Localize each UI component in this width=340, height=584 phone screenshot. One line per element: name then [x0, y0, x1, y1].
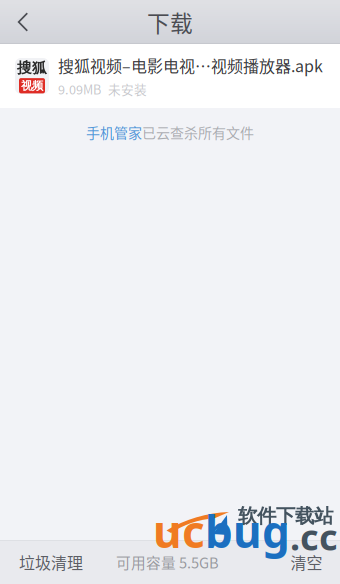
staticText: 垃圾清理 — [19, 550, 83, 574]
staticText: 视频 — [21, 79, 43, 93]
button[interactable]: 垃圾清理 — [0, 540, 102, 584]
staticText: 已云查杀所有文件 — [142, 122, 254, 142]
staticText: 9.09MB — [58, 80, 101, 98]
button[interactable]: Back — [0, 0, 46, 44]
staticText: 搜狐 — [17, 59, 47, 77]
staticText: 手机管家 — [86, 122, 142, 142]
button[interactable]: 搜狐 — [0, 44, 340, 108]
staticText: .cc — [290, 512, 338, 561]
staticText: 软件下载站 — [238, 504, 333, 528]
staticText: 可用容量 5.5GB — [116, 551, 219, 573]
staticText: uc — [153, 501, 205, 561]
staticText: 清空 — [290, 550, 322, 574]
staticText: 下载 — [147, 6, 193, 38]
button[interactable]: 清空 — [233, 540, 340, 584]
staticText: 搜狐视频–电影电视…视频播放器.apk — [58, 54, 323, 77]
staticText: bug — [205, 501, 290, 561]
staticText: 未安装 — [108, 80, 147, 98]
